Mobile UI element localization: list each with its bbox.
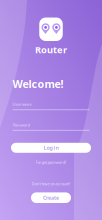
staticText: Welcome! bbox=[12, 77, 63, 91]
button[interactable]: Create bbox=[31, 192, 71, 203]
staticText: Password bbox=[12, 122, 29, 127]
staticText: Create bbox=[43, 194, 59, 201]
staticText: Log in bbox=[43, 144, 58, 151]
button[interactable]: Log in bbox=[11, 143, 91, 153]
button[interactable]: Forgot password? bbox=[23, 159, 79, 166]
staticText: Router bbox=[35, 43, 67, 56]
staticText: Don't have an account? bbox=[31, 181, 70, 186]
staticText: Username bbox=[12, 102, 31, 107]
staticText: Forgot password? bbox=[35, 160, 66, 165]
